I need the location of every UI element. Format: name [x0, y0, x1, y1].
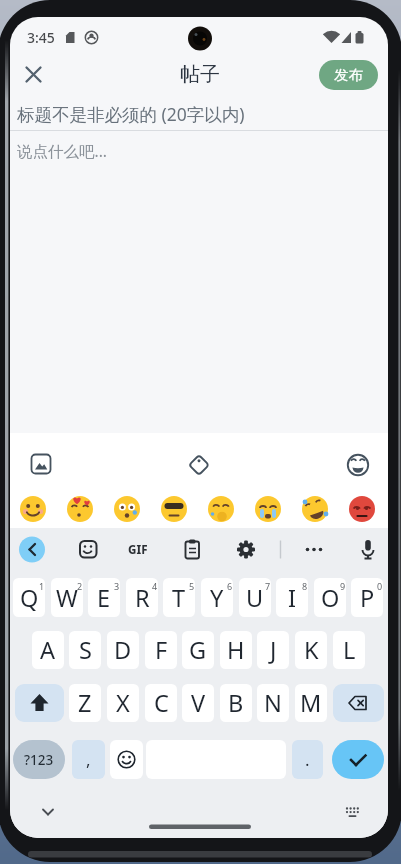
button[interactable]: [78, 539, 98, 560]
staticText: V: [191, 687, 206, 719]
staticText: H: [227, 634, 245, 666]
staticText: ?123: [24, 751, 54, 769]
staticText: Y: [210, 582, 224, 614]
button[interactable]: R: [126, 578, 158, 617]
button[interactable]: F: [145, 631, 177, 669]
staticText: 3:45: [27, 28, 55, 47]
staticText: E: [97, 582, 111, 614]
button[interactable]: 说点什么吧...: [17, 140, 237, 159]
button[interactable]: I: [276, 578, 308, 617]
staticText: X: [116, 687, 130, 719]
button[interactable]: N: [257, 684, 289, 722]
button[interactable]: L: [333, 631, 365, 669]
staticText: 2: [77, 580, 83, 591]
staticText: K: [304, 634, 319, 666]
staticText: J: [270, 634, 277, 666]
button[interactable]: X: [107, 684, 139, 722]
button[interactable]: [30, 453, 52, 475]
button[interactable]: .: [292, 740, 323, 779]
staticText: ,: [86, 748, 91, 771]
staticText: G: [189, 634, 207, 666]
staticText: U: [246, 582, 264, 614]
button[interactable]: Q: [13, 578, 45, 617]
button[interactable]: G: [182, 631, 214, 669]
button[interactable]: C: [145, 684, 177, 722]
button[interactable]: J: [257, 631, 289, 669]
button[interactable]: B: [220, 684, 252, 722]
button[interactable]: [19, 537, 45, 563]
staticText: O: [321, 582, 340, 614]
button[interactable]: Y: [201, 578, 233, 617]
button[interactable]: [349, 496, 375, 522]
staticText: D: [114, 634, 132, 666]
button[interactable]: P: [351, 578, 383, 617]
button[interactable]: T: [163, 578, 195, 617]
staticText: 0: [377, 580, 383, 591]
button[interactable]: [15, 684, 64, 722]
button[interactable]: [110, 740, 143, 779]
button[interactable]: [255, 496, 281, 522]
button[interactable]: [23, 64, 44, 85]
staticText: W: [56, 582, 78, 614]
staticText: 说点什么吧...: [17, 140, 107, 159]
staticText: 6: [227, 580, 233, 591]
button[interactable]: [304, 539, 324, 560]
button[interactable]: [208, 496, 234, 522]
staticText: M: [300, 687, 322, 719]
staticText: Q: [20, 582, 39, 614]
button[interactable]: [20, 496, 46, 522]
button[interactable]: [332, 740, 384, 779]
button[interactable]: [114, 496, 140, 522]
staticText: 7: [265, 580, 271, 591]
button[interactable]: W: [51, 578, 83, 617]
button[interactable]: ?123: [13, 740, 65, 779]
button[interactable]: [358, 539, 378, 560]
staticText: 发布: [334, 66, 363, 84]
button[interactable]: 发布: [319, 60, 378, 90]
button[interactable]: Z: [69, 684, 101, 722]
staticText: T: [172, 582, 186, 614]
staticText: S: [79, 634, 92, 666]
button[interactable]: [188, 454, 210, 476]
button[interactable]: O: [314, 578, 346, 617]
button[interactable]: D: [107, 631, 139, 669]
staticText: 帖子: [180, 62, 220, 87]
button[interactable]: [67, 496, 93, 522]
staticText: P: [360, 582, 375, 614]
button[interactable]: [161, 496, 187, 522]
button[interactable]: GIF: [126, 540, 150, 559]
staticText: A: [40, 634, 56, 666]
staticText: 5: [189, 580, 195, 591]
staticText: Z: [78, 687, 92, 719]
button[interactable]: [38, 802, 58, 822]
button[interactable]: ,: [72, 740, 105, 779]
staticText: C: [154, 687, 169, 719]
button[interactable]: S: [69, 631, 101, 669]
button[interactable]: E: [88, 578, 120, 617]
button[interactable]: [236, 539, 256, 560]
button[interactable]: K: [295, 631, 327, 669]
button[interactable]: M: [295, 684, 327, 722]
button[interactable]: V: [182, 684, 214, 722]
staticText: 9: [340, 580, 346, 591]
button[interactable]: [347, 454, 369, 476]
staticText: .: [305, 748, 310, 771]
button[interactable]: [333, 684, 384, 722]
button[interactable]: [182, 539, 202, 560]
staticText: B: [228, 687, 244, 719]
button[interactable]: [302, 496, 328, 522]
staticText: R: [135, 582, 150, 614]
staticText: I: [288, 582, 296, 614]
button[interactable]: 标题不是非必须的 (20字以内): [17, 102, 327, 124]
staticText: GIF: [128, 542, 148, 558]
staticText: 8: [302, 580, 308, 591]
staticText: 1: [39, 580, 45, 591]
button[interactable]: U: [239, 578, 271, 617]
button[interactable]: A: [32, 631, 64, 669]
button[interactable]: H: [220, 631, 252, 669]
staticText: 4: [152, 580, 158, 591]
staticText: N: [264, 687, 282, 719]
button[interactable]: [342, 802, 362, 822]
staticText: L: [343, 634, 356, 666]
